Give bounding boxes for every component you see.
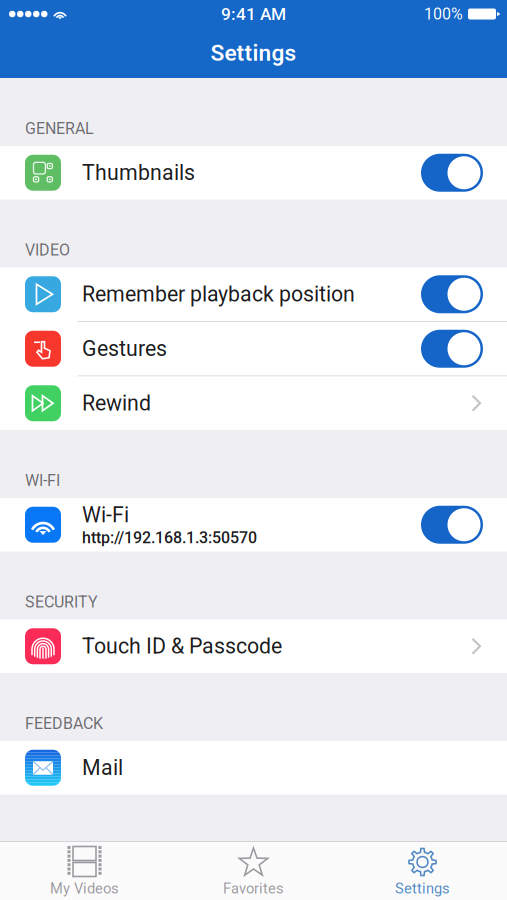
button[interactable]: Mail (0, 741, 507, 794)
staticText: http://192.168.1.3:50570 (82, 528, 257, 547)
staticText: Gestures (82, 336, 167, 361)
staticText: VIDEO (25, 241, 70, 260)
button[interactable]: Wi-Fi (0, 498, 507, 551)
staticText: Wi-Fi (82, 502, 129, 527)
staticText: Mail (82, 755, 123, 780)
staticText: GENERAL (25, 119, 94, 138)
staticText: FEEDBACK (25, 714, 103, 733)
staticText: Settings (395, 880, 450, 897)
staticText: 100% (424, 5, 463, 23)
staticText: Settings (210, 40, 296, 66)
staticText: My Videos (50, 880, 119, 897)
staticText: Thumbnails (82, 160, 195, 185)
button[interactable]: Settings (338, 842, 507, 900)
button[interactable]: Thumbnails (0, 146, 507, 199)
button[interactable]: Touch ID & Passcode (0, 619, 507, 673)
button[interactable]: Rewind (0, 376, 507, 430)
button[interactable]: My Videos (0, 842, 169, 900)
staticText: Touch ID & Passcode (82, 634, 282, 659)
staticText: SECURITY (25, 593, 98, 612)
staticText: Remember playback position (82, 282, 355, 307)
staticText: Rewind (82, 391, 151, 416)
button[interactable]: Remember playback position (0, 267, 507, 321)
staticText: 9:41 AM (221, 4, 286, 24)
staticText: WI-FI (25, 471, 60, 490)
button[interactable]: Favorites (169, 842, 338, 900)
button[interactable]: Gestures (0, 322, 507, 375)
staticText: Favorites (223, 880, 284, 897)
